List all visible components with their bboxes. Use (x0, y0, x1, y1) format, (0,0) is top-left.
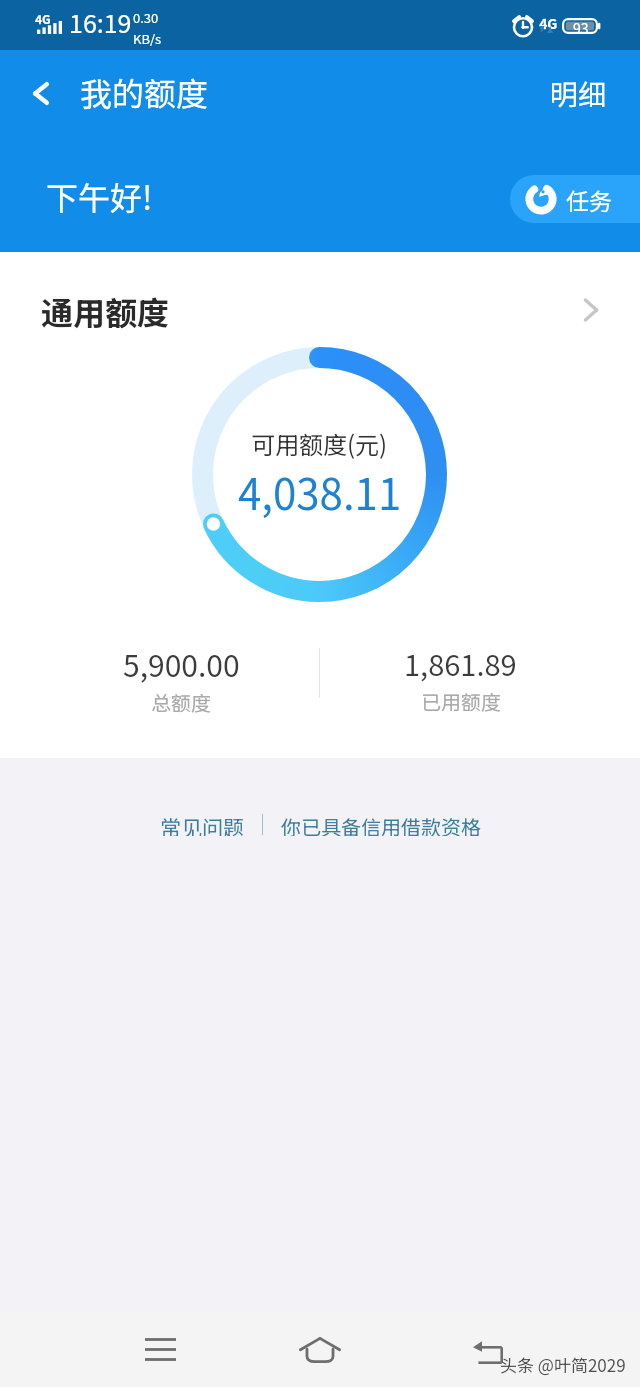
button[interactable]: 常见问题 (160, 802, 244, 846)
button[interactable]: 明细 (534, 63, 626, 121)
staticText: 可用额度(元) (251, 426, 388, 461)
staticText: 任务 (566, 183, 612, 216)
staticText: 4G (35, 10, 51, 27)
staticText: 16:19 (69, 4, 132, 40)
staticText: 明细 (550, 73, 607, 114)
button[interactable]: Back (13, 65, 69, 121)
staticText: 已用额度 (421, 687, 501, 716)
staticText: 1,861.89 (404, 642, 517, 684)
staticText: 我的额度 (80, 69, 209, 115)
button[interactable]: 任务 (510, 175, 640, 223)
staticText: KB/s (133, 29, 162, 48)
button[interactable]: Recent apps (120, 1312, 200, 1387)
staticText: 4,038.11 (238, 461, 402, 522)
staticText: 总额度 (151, 688, 211, 717)
staticText: 头条 @叶简2029 (500, 1352, 626, 1377)
staticText: 93 (573, 18, 589, 38)
staticText: 5,900.00 (123, 642, 240, 685)
staticText: 常见问题 (160, 812, 244, 836)
staticText: 下午好! (46, 173, 153, 219)
button[interactable]: 通用额度 (0, 264, 640, 356)
button[interactable]: Back (448, 1312, 528, 1387)
staticText: 4G (539, 13, 558, 33)
staticText: 0.30 (133, 8, 159, 27)
staticText: 你已具备信用借款资格 (281, 812, 481, 836)
button[interactable]: Home (280, 1312, 360, 1387)
button[interactable]: 你已具备信用借款资格 (281, 802, 481, 846)
staticText: 通用额度 (41, 288, 170, 334)
